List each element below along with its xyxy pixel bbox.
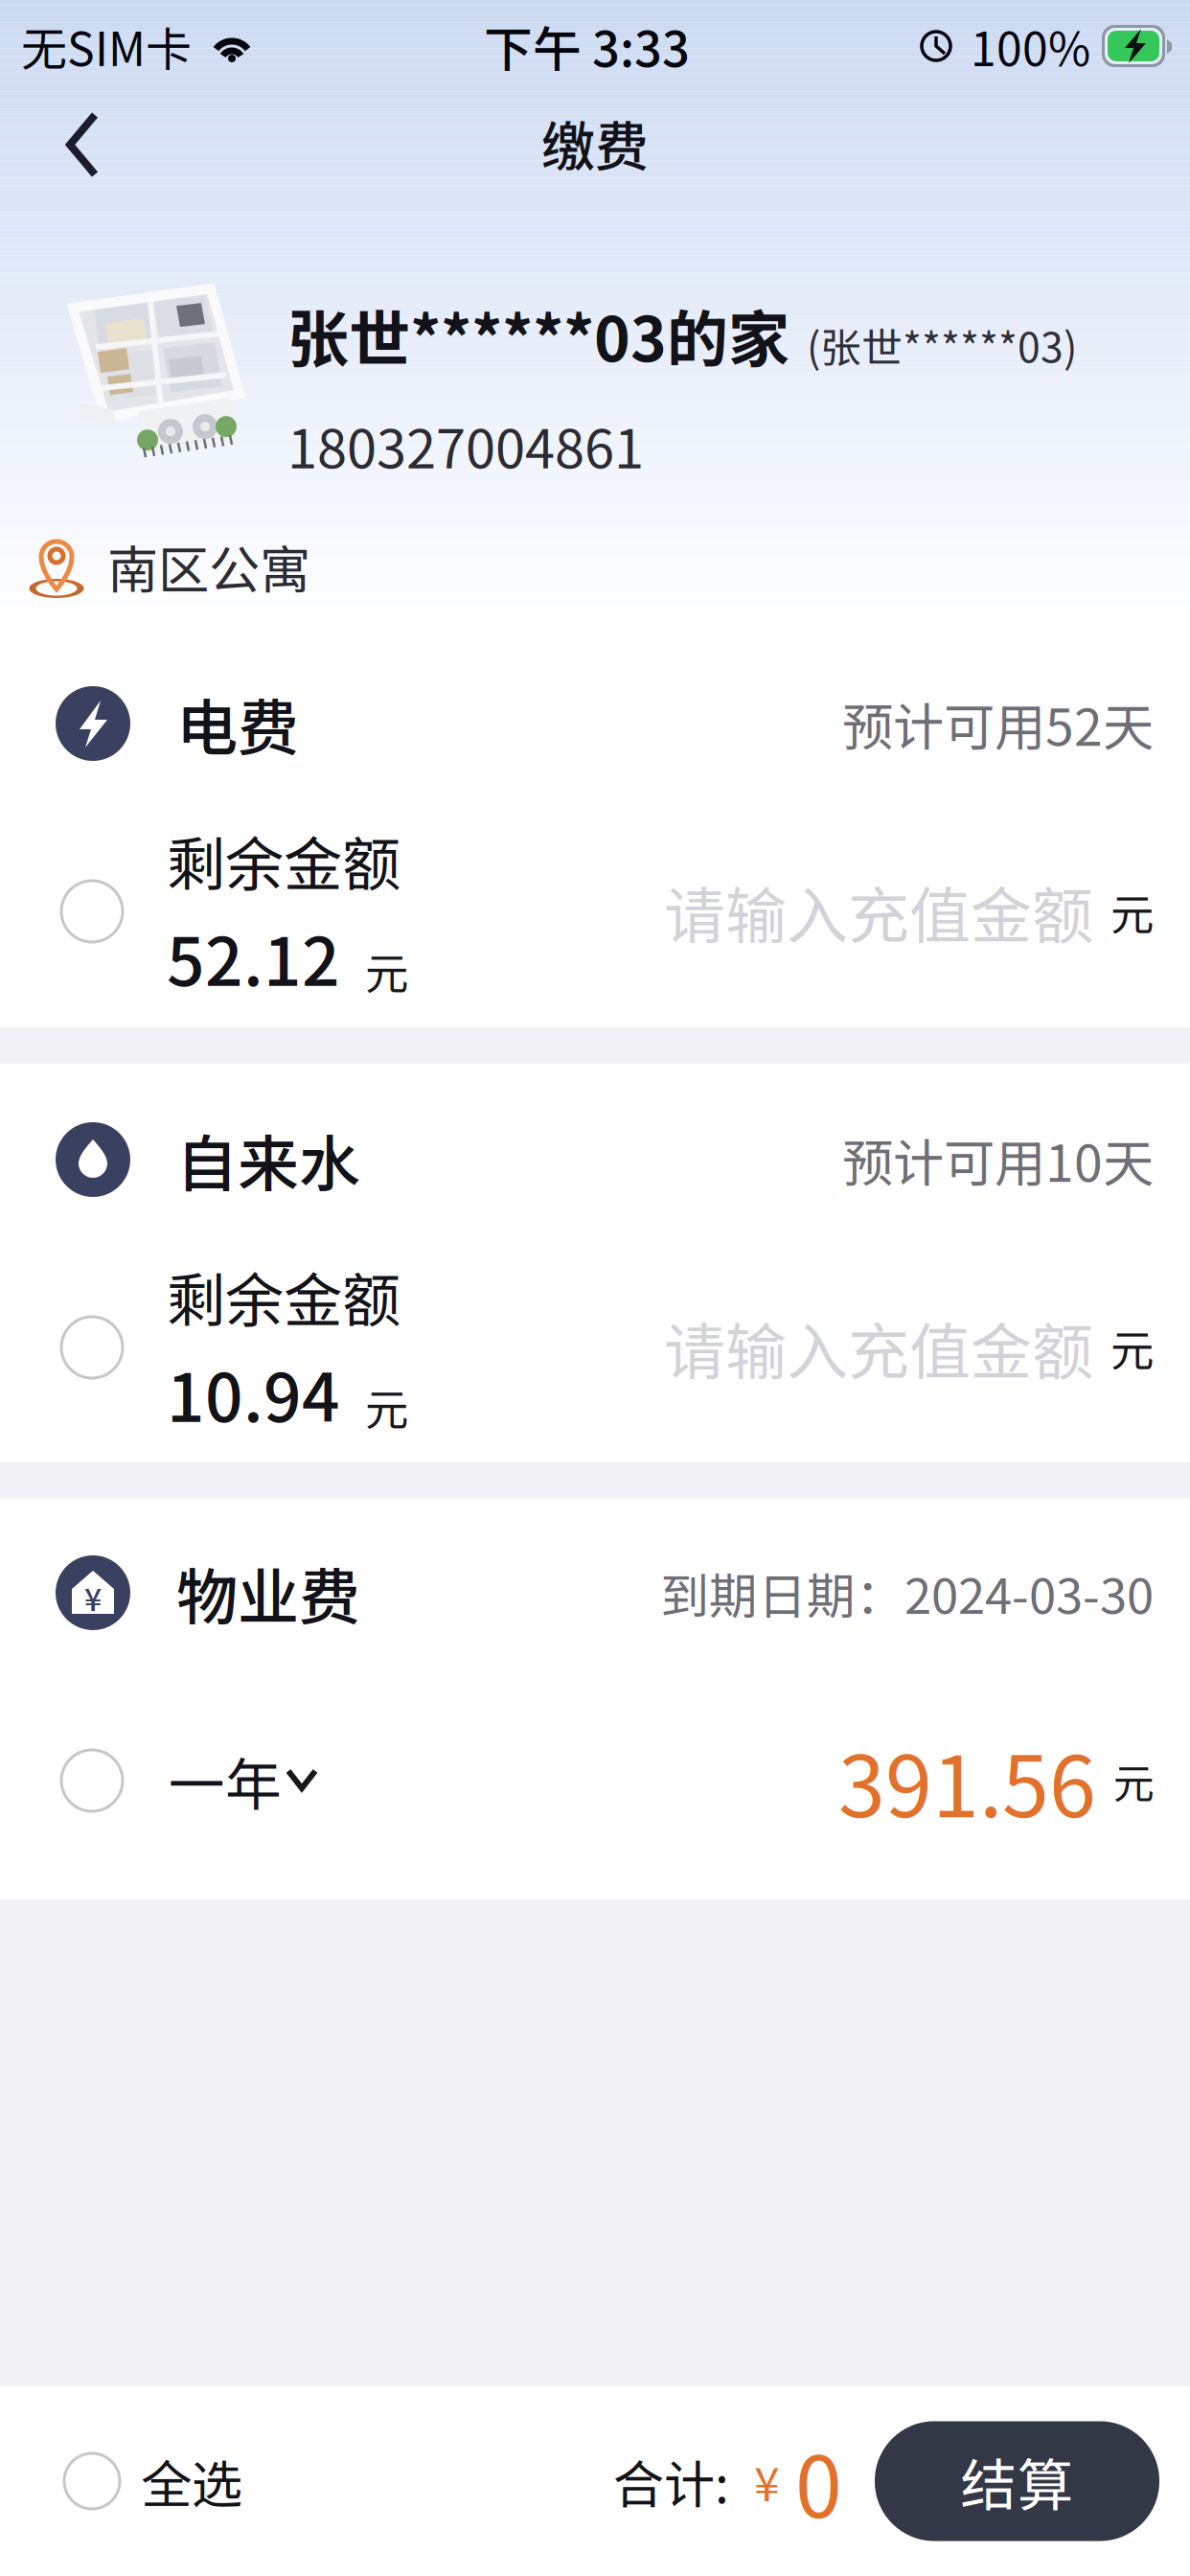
staticText: 到期日期：2024-03-30 bbox=[660, 1558, 1154, 1628]
staticText: 100% bbox=[971, 13, 1090, 79]
staticText: 391.56 bbox=[838, 1720, 1096, 1842]
staticText: 下午 3:33 bbox=[484, 11, 690, 81]
button[interactable]: Select 自来水 bbox=[54, 1309, 130, 1386]
button[interactable]: 全选 bbox=[0, 2419, 262, 2543]
staticText: 请输入充值金额 bbox=[664, 1303, 1093, 1392]
staticText: 结算 bbox=[961, 2440, 1074, 2522]
staticText: (张世******03) bbox=[807, 315, 1077, 375]
staticText: 元 bbox=[1110, 880, 1154, 943]
button[interactable]: 一年 bbox=[130, 1728, 320, 1833]
staticText: 52.12 bbox=[167, 909, 340, 1005]
staticText: 剩余金额 bbox=[167, 818, 400, 903]
staticText: 剩余金额 bbox=[167, 1254, 400, 1339]
staticText: 全选 bbox=[141, 2444, 242, 2518]
button[interactable]: 结算 bbox=[875, 2421, 1159, 2541]
staticText: 物业费 bbox=[176, 1548, 360, 1637]
staticText: 无SIM卡 bbox=[21, 13, 192, 79]
staticText: 元 bbox=[1113, 1751, 1155, 1810]
staticText: 元 bbox=[1110, 1316, 1154, 1379]
staticText: 180327004861 bbox=[287, 406, 644, 484]
staticText: 南区公寓 bbox=[107, 529, 310, 603]
staticText: 请输入充值金额 bbox=[664, 867, 1093, 956]
staticText: 0 bbox=[795, 2420, 842, 2542]
staticText: 元 bbox=[365, 1375, 408, 1438]
staticText: 张世******03的家 bbox=[287, 290, 790, 379]
button[interactable]: Back bbox=[0, 95, 135, 208]
staticText: 电费 bbox=[176, 679, 299, 768]
staticText: 预计可用10天 bbox=[842, 1123, 1154, 1197]
staticText: 10.94 bbox=[167, 1345, 340, 1441]
staticText: ¥ bbox=[754, 2448, 780, 2514]
staticText: 缴费 bbox=[541, 104, 649, 182]
button[interactable]: Select property fee bbox=[54, 1742, 130, 1819]
button[interactable]: Select 电费 bbox=[54, 873, 130, 950]
staticText: 自来水 bbox=[176, 1115, 360, 1204]
staticText: 合计: bbox=[613, 2444, 729, 2518]
staticText: 元 bbox=[365, 939, 408, 1002]
staticText: 预计可用52天 bbox=[842, 687, 1154, 761]
staticText: 一年 bbox=[169, 1740, 282, 1821]
staticText: ¥ bbox=[84, 1575, 102, 1620]
